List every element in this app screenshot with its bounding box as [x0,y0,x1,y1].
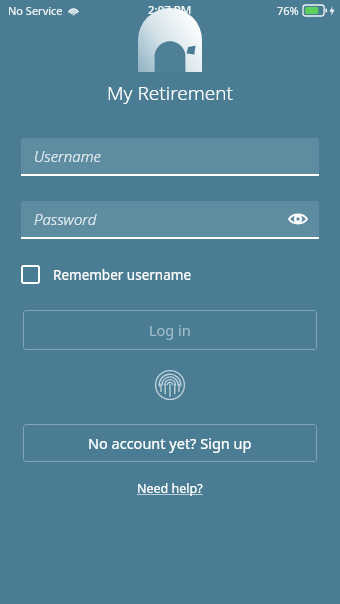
staticText: Remember username [53,266,192,284]
button[interactable]: Log in with fingerprint [153,368,187,402]
staticText: No account yet? Sign up [88,433,252,453]
button[interactable]: Need help? [133,476,207,501]
button[interactable]: No account yet? Sign up [23,424,317,462]
staticText: Username [34,146,102,166]
staticText: Log in [149,320,191,340]
staticText: No Service [8,3,63,18]
button[interactable]: Log in [23,310,317,350]
staticText: Need help? [137,480,203,497]
button[interactable]: Remember username [21,261,192,288]
button[interactable]: Password [21,201,319,239]
button[interactable]: Show password [286,207,310,231]
staticText: Password [34,209,97,229]
staticText: My Retirement [107,80,233,106]
staticText: 76% [277,3,299,18]
staticText: 2:07 PM [148,2,192,18]
button[interactable]: Username [21,138,319,176]
